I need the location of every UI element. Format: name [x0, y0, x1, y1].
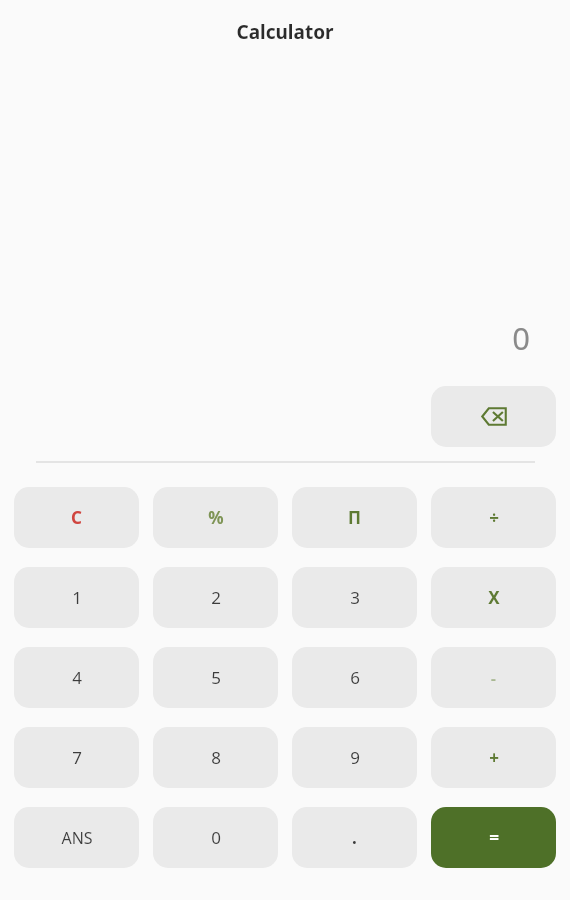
staticText: X [488, 586, 500, 609]
button[interactable]: X [431, 567, 556, 628]
staticText: C [71, 506, 82, 529]
button[interactable]: - [431, 647, 556, 708]
button[interactable]: = [431, 807, 556, 868]
staticText: 5 [211, 666, 221, 689]
button[interactable]: 5 [153, 647, 278, 708]
staticText: 1 [72, 586, 82, 609]
staticText: 4 [72, 666, 82, 689]
staticText: 7 [72, 746, 82, 769]
staticText: 6 [350, 666, 360, 689]
button[interactable]: 2 [153, 567, 278, 628]
button[interactable]: . [292, 807, 417, 868]
staticText: . [352, 826, 357, 849]
button[interactable]: 1 [14, 567, 139, 628]
staticText: 3 [350, 586, 360, 609]
button[interactable]: 0 [153, 807, 278, 868]
staticText: 0 [211, 826, 221, 849]
button[interactable]: П [292, 487, 417, 548]
staticText: ÷ [489, 506, 499, 529]
staticText: 0 [512, 317, 530, 359]
button[interactable]: 3 [292, 567, 417, 628]
button[interactable]: ÷ [431, 487, 556, 548]
staticText: = [489, 826, 499, 849]
button[interactable]: C [14, 487, 139, 548]
staticText: % [208, 506, 224, 529]
button[interactable]: 8 [153, 727, 278, 788]
button[interactable]: ANS [14, 807, 139, 868]
staticText: Calculator [236, 19, 334, 45]
staticText: - [491, 668, 496, 688]
staticText: ANS [61, 827, 93, 849]
button[interactable]: 6 [292, 647, 417, 708]
staticText: П [348, 506, 361, 529]
staticText: 2 [211, 586, 221, 609]
button[interactable]: Backspace [431, 386, 556, 447]
staticText: 8 [211, 746, 221, 769]
button[interactable]: 9 [292, 727, 417, 788]
button[interactable]: 4 [14, 647, 139, 708]
button[interactable]: % [153, 487, 278, 548]
staticText: 9 [350, 746, 360, 769]
button[interactable]: + [431, 727, 556, 788]
button[interactable]: 7 [14, 727, 139, 788]
staticText: + [489, 746, 499, 769]
